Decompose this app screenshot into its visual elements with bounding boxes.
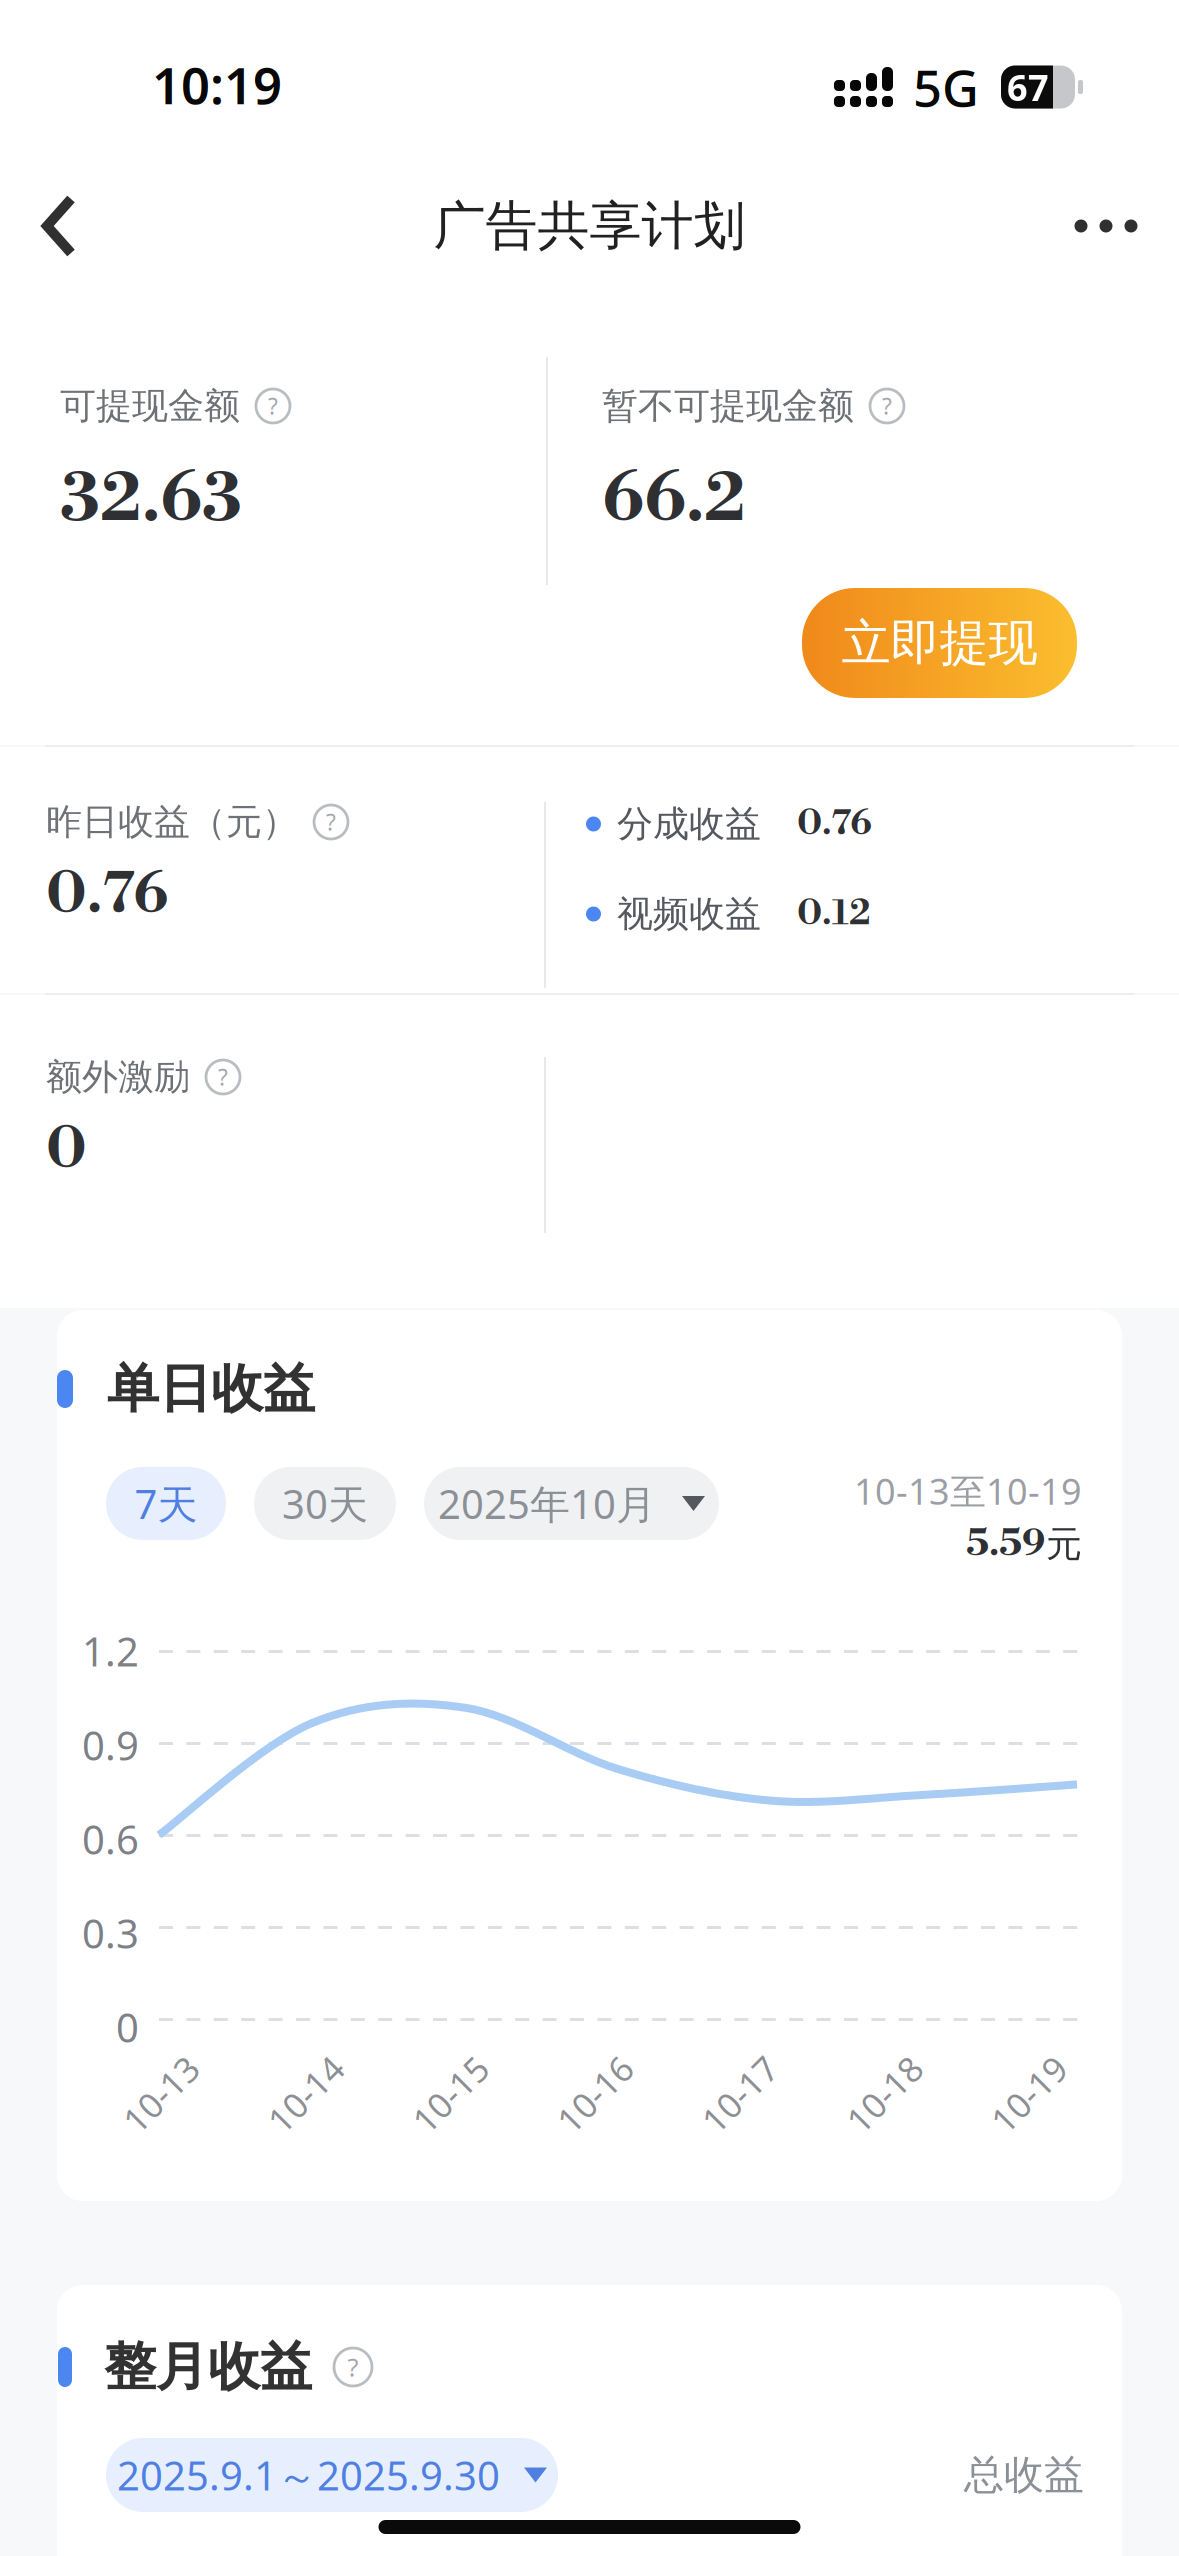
staticText: 视频收益	[617, 892, 761, 936]
staticText: 7天	[134, 1477, 197, 1530]
staticText: 10-19	[983, 2071, 1074, 2117]
staticText: 10-14	[260, 2071, 351, 2117]
staticText: 10-13	[115, 2071, 206, 2117]
staticText: 0	[116, 2000, 139, 2053]
staticText: ?	[347, 2350, 358, 2384]
staticText: 单日收益	[107, 1357, 315, 1421]
staticText: 0.6	[82, 1812, 139, 1865]
staticText: 10-18	[839, 2071, 930, 2117]
staticText: ?	[326, 807, 336, 837]
staticText: 66.2	[602, 458, 746, 542]
staticText: 10-17	[694, 2071, 785, 2117]
staticText: 0.76	[46, 860, 168, 930]
staticText: ?	[882, 391, 892, 421]
staticText: 0	[46, 1115, 87, 1185]
staticText: 0.12	[797, 892, 871, 936]
staticText: 32.63	[60, 458, 242, 542]
staticText: ?	[218, 1062, 228, 1092]
button[interactable]: 立即提现	[802, 588, 1077, 698]
button[interactable]: Back	[20, 171, 98, 281]
staticText: 5G	[913, 53, 979, 121]
staticText: 2025.9.1～2025.9.30	[117, 2448, 500, 2502]
staticText: 10-15	[405, 2071, 496, 2117]
staticText: 暂不可提现金额	[602, 384, 854, 428]
staticText: ?	[268, 391, 278, 421]
staticText: 额外激励	[46, 1055, 190, 1099]
staticText: 可提现金额	[60, 384, 240, 428]
button[interactable]: 7天	[106, 1467, 226, 1540]
staticText: 67	[1007, 63, 1049, 111]
staticText: 10-16	[549, 2071, 640, 2117]
staticText: 30天	[282, 1477, 368, 1530]
staticText: 0.9	[82, 1718, 139, 1771]
staticText: 2025年10月	[438, 1477, 656, 1530]
staticText: 1.2	[82, 1624, 139, 1677]
staticText: 总收益	[964, 2450, 1084, 2499]
staticText: 昨日收益（元）	[46, 800, 298, 844]
staticText: 整月收益	[104, 2335, 312, 2399]
staticText: 广告共享计划	[433, 194, 745, 258]
staticText: 10:19	[152, 51, 282, 118]
staticText: 0.3	[82, 1906, 139, 1959]
staticText: 元	[1046, 1522, 1082, 1566]
button[interactable]: More options	[1053, 171, 1159, 281]
button[interactable]: 2025年10月	[424, 1467, 719, 1540]
button[interactable]: 30天	[254, 1467, 396, 1540]
staticText: 分成收益	[617, 802, 761, 846]
staticText: 5.59	[966, 1521, 1046, 1567]
staticText: 立即提现	[841, 613, 1037, 673]
button[interactable]: 2025.9.1～2025.9.30	[106, 2438, 558, 2512]
staticText: 0.76	[797, 802, 872, 846]
staticText: 10-13至10-19	[854, 1467, 1082, 1515]
